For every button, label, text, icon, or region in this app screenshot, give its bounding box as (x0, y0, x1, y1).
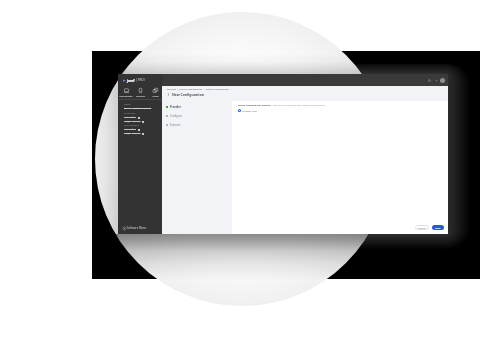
staticText: Cancel (418, 226, 426, 229)
button[interactable]: Features (166, 123, 181, 127)
button[interactable]: Computers (118, 127, 162, 131)
staticText: Configure (170, 114, 183, 118)
staticText: Provider type (242, 109, 257, 112)
button[interactable]: Mobile Devices (118, 119, 162, 123)
button[interactable]: Computers (118, 115, 162, 119)
button[interactable]: Provider (166, 105, 181, 109)
staticText: Mobile Devices (124, 120, 141, 123)
button[interactable]: Provider type (238, 109, 257, 112)
button[interactable]: Mobile Devices (118, 131, 162, 135)
button[interactable]: More (148, 86, 162, 99)
button[interactable]: Software Menu (118, 222, 162, 234)
staticText: Choose a provider for your device admini… (273, 104, 325, 107)
staticText: New Configuration (172, 92, 204, 97)
button[interactable]: Devices (133, 86, 148, 99)
staticText: Provider (170, 105, 181, 109)
staticText: More (152, 94, 159, 97)
staticText: Computers (124, 128, 137, 131)
staticText: BUILD CONFIGURATIONS (124, 107, 152, 110)
staticText: Mobile Devices (124, 132, 141, 135)
button[interactable]: Account (440, 78, 445, 83)
staticText: Settings | Device Management | Device Ad… (167, 88, 229, 91)
button[interactable]: Next (432, 225, 444, 230)
staticText: Computers (124, 116, 137, 119)
staticText: Software Menu (127, 226, 147, 230)
staticText: |PRO) (136, 78, 145, 82)
staticText: Next (435, 226, 441, 229)
staticText: Computers (119, 94, 133, 97)
button[interactable]: Configure (166, 114, 183, 118)
staticText: INVENTORY (124, 112, 136, 115)
staticText: Devices (136, 94, 145, 97)
button[interactable]: Cancel (415, 225, 429, 230)
button[interactable]: BUILD CONFIGURATIONS (118, 106, 162, 111)
staticText: SMART (124, 103, 131, 106)
button[interactable]: Computers (118, 86, 133, 99)
staticText: Features (170, 123, 181, 127)
button[interactable]: Notifications (426, 77, 432, 83)
staticText: Device Administrator Provider (238, 104, 271, 107)
staticText: MANAGEMENT (124, 124, 139, 127)
button[interactable]: Quick actions (433, 77, 439, 83)
staticText: jamf (127, 78, 135, 83)
